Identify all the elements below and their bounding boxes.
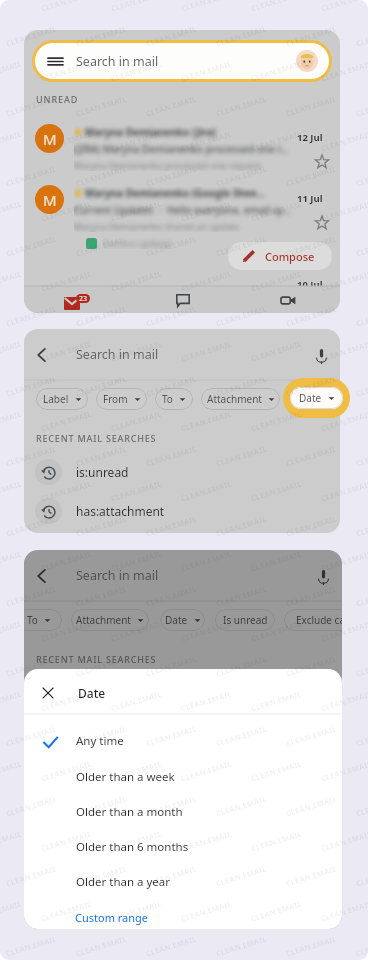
staticText: To — [162, 392, 173, 406]
button[interactable]: Back — [24, 337, 60, 373]
button[interactable]: Older than a month — [24, 798, 342, 826]
staticText: Search in mail — [76, 346, 159, 363]
button[interactable]: has:attachment — [24, 498, 340, 524]
staticText: CLEAN.EMAIL — [145, 373, 198, 399]
staticText: CLEAN.EMAIL — [110, 548, 163, 574]
staticText: CLEAN.EMAIL — [320, 548, 368, 574]
staticText: M — [43, 190, 57, 210]
button[interactable]: Older than 6 months — [24, 833, 342, 861]
staticText: 23 — [79, 294, 88, 303]
staticText: CLEAN.EMAIL — [75, 373, 128, 399]
staticText: CLEAN.EMAIL — [180, 758, 233, 784]
button[interactable]: Mail — [24, 286, 130, 313]
staticText: CLEAN.EMAIL — [5, 373, 58, 399]
staticText: CLEAN.EMAIL — [75, 723, 128, 749]
button[interactable]: Account — [296, 50, 318, 72]
staticText: CLEAN.EMAIL — [320, 0, 368, 13]
button[interactable]: Older than a year — [24, 868, 342, 896]
staticText: CLEAN.EMAIL — [320, 898, 368, 924]
staticText: CLEAN.EMAIL — [40, 478, 93, 504]
button[interactable]: Older than a week — [24, 763, 342, 791]
staticText: Current Updates - Hello everyone, email … — [74, 203, 291, 217]
staticText: CLEAN.EMAIL — [5, 513, 58, 539]
button[interactable]: M — [24, 125, 340, 189]
staticText: has:attachment — [76, 503, 165, 519]
staticText: Older than a year — [76, 874, 171, 890]
button[interactable]: To — [155, 388, 193, 410]
button[interactable]: Search in mail — [32, 40, 332, 82]
staticText: CLEAN.EMAIL — [5, 23, 58, 49]
staticText: CLEAN.EMAIL — [320, 828, 368, 854]
staticText: CLEAN.EMAIL — [285, 653, 338, 679]
button[interactable]: Label — [36, 388, 88, 410]
button[interactable]: Close — [24, 669, 72, 717]
staticText: CLEAN.EMAIL — [0, 618, 23, 644]
staticText: CLEAN.EMAIL — [215, 23, 268, 49]
staticText: CLEAN.EMAIL — [180, 0, 233, 13]
staticText: CLEAN.EMAIL — [0, 828, 23, 854]
staticText: CLEAN.EMAIL — [5, 303, 58, 329]
button[interactable]: Date — [283, 378, 350, 418]
staticText: CLEAN.EMAIL — [285, 233, 338, 259]
staticText: Maryna Demianenko (Jira) — [85, 125, 216, 139]
staticText: CLEAN.EMAIL — [215, 303, 268, 329]
staticText: CLEAN.EMAIL — [0, 198, 23, 224]
staticText: CLEAN.EMAIL — [180, 548, 233, 574]
staticText: CLEAN.EMAIL — [180, 898, 233, 924]
staticText: CLEAN.EMAIL — [285, 583, 338, 609]
staticText: CLEAN.EMAIL — [145, 653, 198, 679]
staticText: CLEAN.EMAIL — [250, 548, 303, 574]
staticText: CLEAN.EMAIL — [110, 408, 163, 434]
staticText: CLEAN.EMAIL — [180, 688, 233, 714]
button[interactable]: Compose — [228, 242, 332, 270]
staticText: CLEAN.EMAIL — [40, 898, 93, 924]
staticText: CLEAN.EMAIL — [110, 688, 163, 714]
staticText: CLEAN.EMAIL — [250, 408, 303, 434]
staticText: CLEAN.EMAIL — [320, 688, 368, 714]
staticText: CLEAN.EMAIL — [0, 0, 23, 13]
staticText: CLEAN.EMAIL — [0, 268, 23, 294]
button[interactable]: Attachment — [201, 388, 280, 410]
staticText: CLEAN.EMAIL — [110, 58, 163, 84]
staticText: Older than a month — [76, 804, 183, 820]
staticText: CLEAN.EMAIL — [180, 58, 233, 84]
staticText: CLEAN.EMAIL — [40, 688, 93, 714]
staticText: Compose — [265, 249, 315, 264]
staticText: CLEAN.EMAIL — [145, 933, 198, 959]
button[interactable]: Custom range — [24, 905, 342, 929]
staticText: CLEAN.EMAIL — [0, 898, 23, 924]
staticText: CLEAN.EMAIL — [145, 233, 198, 259]
staticText: CLEAN.EMAIL — [40, 828, 93, 854]
button[interactable]: Voice search — [304, 338, 338, 372]
button[interactable]: Meet — [235, 286, 340, 313]
staticText: Attachment — [76, 613, 131, 627]
button[interactable]: Chat — [130, 286, 235, 313]
staticText: CLEAN.EMAIL — [250, 198, 303, 224]
staticText: CLEAN.EMAIL — [75, 933, 128, 959]
staticText: CLEAN.EMAIL — [5, 443, 58, 469]
staticText: CLEAN.EMAIL — [145, 723, 198, 749]
staticText: CLEAN.EMAIL — [0, 58, 23, 84]
button[interactable]: is:unread — [24, 459, 340, 485]
staticText: CLEAN.EMAIL — [0, 338, 23, 364]
button[interactable]: From — [96, 388, 147, 410]
staticText: CLEAN.EMAIL — [0, 758, 23, 784]
staticText: CLEAN.EMAIL — [285, 23, 338, 49]
staticText: CLEAN.EMAIL — [320, 758, 368, 784]
button[interactable]: M — [24, 186, 340, 250]
staticText: CLEAN.EMAIL — [75, 653, 128, 679]
staticText: (JIRA) Maryna Demianenko processed one r… — [74, 142, 289, 156]
staticText: CLEAN.EMAIL — [5, 933, 58, 959]
staticText: CLEAN.EMAIL — [0, 548, 23, 574]
button[interactable]: Any time — [24, 727, 342, 755]
